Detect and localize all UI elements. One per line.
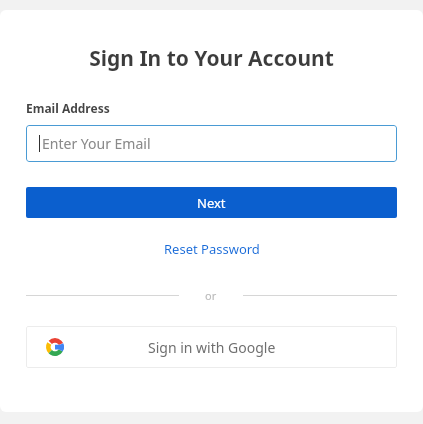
staticText: Enter Your Email	[42, 134, 151, 153]
button[interactable]: Google logo	[26, 326, 397, 368]
button[interactable]: Reset Password	[26, 240, 397, 258]
staticText: Sign in with Google	[148, 338, 276, 357]
staticText: or	[205, 288, 217, 303]
staticText: Reset Password	[164, 240, 260, 258]
button[interactable]: Enter Your Email	[26, 125, 397, 162]
staticText: Next	[197, 194, 226, 212]
staticText: Sign In to Your Account	[26, 44, 397, 73]
other: Google logo	[46, 338, 64, 356]
button[interactable]: Next	[26, 187, 397, 218]
staticText: Email Address	[26, 100, 110, 116]
